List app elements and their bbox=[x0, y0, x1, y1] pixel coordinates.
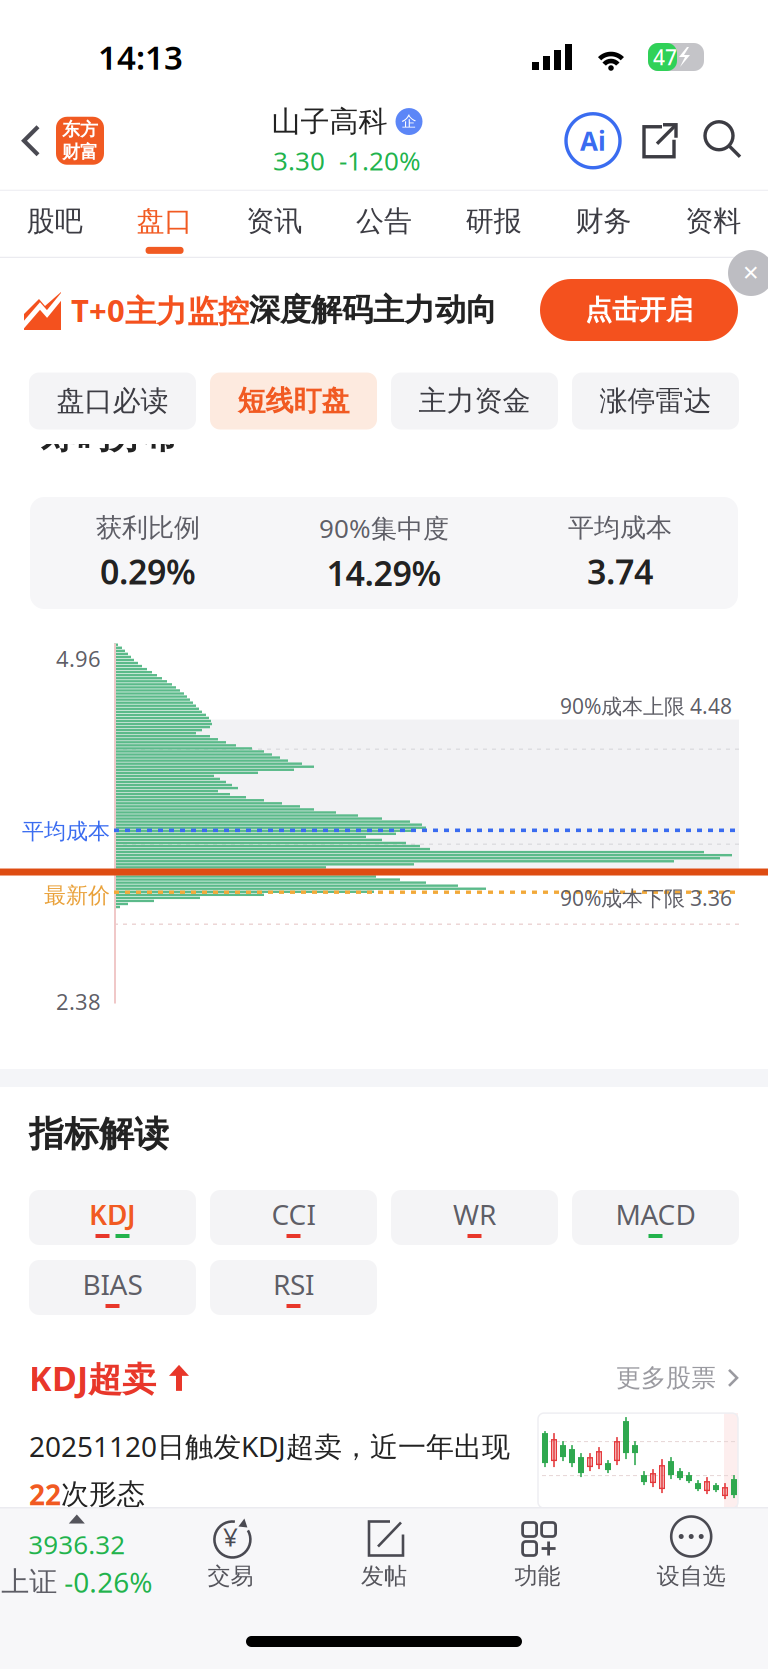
staticText: 涨停雷达 bbox=[599, 383, 711, 419]
staticText: 设自选 bbox=[657, 1561, 726, 1590]
staticText: KDJ超卖 bbox=[29, 1355, 156, 1401]
button[interactable]: 更多股票 bbox=[616, 1362, 739, 1394]
button[interactable]: RSI bbox=[210, 1260, 377, 1315]
button[interactable]: 设自选 bbox=[614, 1508, 768, 1612]
staticText: 短线盯盘 bbox=[237, 383, 349, 419]
staticText: 深度解码主力动向 bbox=[249, 290, 497, 330]
staticText: 东方 bbox=[62, 118, 98, 141]
staticText: 90%成本下限 3.36 bbox=[560, 883, 732, 912]
staticText: 获利比例 bbox=[96, 511, 200, 544]
staticText: 更多股票 bbox=[616, 1362, 716, 1394]
staticText: 财富 bbox=[62, 141, 98, 163]
staticText: 0.29% bbox=[100, 548, 196, 594]
staticText: 3936.32 bbox=[28, 1526, 125, 1562]
staticText: ¥ bbox=[223, 1519, 238, 1554]
staticText: 指标解读 bbox=[29, 1112, 169, 1156]
staticText: RSI bbox=[273, 1265, 314, 1303]
button[interactable]: 3936.32 bbox=[0, 1508, 154, 1612]
staticText: 资讯 bbox=[246, 204, 302, 239]
staticText: WR bbox=[453, 1195, 496, 1233]
button[interactable]: ¥ bbox=[154, 1508, 307, 1612]
button[interactable]: 资讯 bbox=[219, 191, 329, 257]
staticText: 平均成本 bbox=[568, 511, 672, 544]
staticText: 企 bbox=[401, 112, 416, 131]
button[interactable]: 盘口必读 bbox=[29, 372, 196, 429]
button[interactable]: 分享 bbox=[638, 119, 682, 163]
staticText: 2.38 bbox=[56, 986, 101, 1016]
button[interactable]: 点击开启 bbox=[540, 279, 738, 341]
button[interactable]: CCI bbox=[210, 1190, 377, 1245]
staticText: 4.96 bbox=[56, 643, 101, 673]
staticText: 次形态 bbox=[61, 1477, 145, 1512]
staticText: 盘口 bbox=[137, 204, 193, 239]
staticText: 筹码分布 bbox=[41, 415, 177, 458]
button[interactable]: 研报 bbox=[439, 191, 549, 257]
button[interactable]: WR bbox=[391, 1190, 558, 1245]
staticText: 上证 bbox=[1, 1564, 57, 1600]
staticText: 股吧 bbox=[27, 204, 83, 239]
staticText: 研报 bbox=[466, 204, 522, 239]
staticText: 90%成本上限 4.48 bbox=[560, 691, 732, 720]
button[interactable]: 返回 bbox=[0, 117, 104, 165]
staticText: 47 bbox=[653, 43, 677, 71]
staticText: 功能 bbox=[515, 1561, 561, 1590]
staticText: 资料 bbox=[685, 204, 741, 239]
staticText: CCI bbox=[271, 1195, 315, 1233]
staticText: BIAS bbox=[82, 1265, 142, 1303]
button[interactable]: 盘口 bbox=[110, 191, 219, 257]
staticText: 22 bbox=[29, 1475, 61, 1513]
staticText: 3.74 bbox=[587, 548, 653, 594]
staticText: 山子高科 bbox=[271, 103, 387, 140]
staticText: 发帖 bbox=[361, 1561, 407, 1590]
staticText: T+0主力监控 bbox=[71, 289, 249, 331]
staticText: 14.29% bbox=[326, 550, 441, 596]
staticText: 公告 bbox=[356, 204, 412, 239]
staticText: 平均成本 bbox=[22, 817, 110, 845]
button[interactable]: 股吧 bbox=[0, 191, 110, 257]
staticText: -0.26% bbox=[64, 1563, 152, 1601]
staticText: 最新价 bbox=[44, 881, 110, 909]
staticText: MACD bbox=[615, 1195, 695, 1233]
button[interactable]: MACD bbox=[572, 1190, 739, 1245]
button[interactable]: 财务 bbox=[549, 191, 658, 257]
staticText: ✕ bbox=[742, 261, 760, 285]
button[interactable]: 公告 bbox=[329, 191, 439, 257]
button[interactable]: KDJ bbox=[29, 1190, 196, 1245]
button[interactable]: 涨停雷达 bbox=[572, 372, 739, 429]
button[interactable]: 功能 bbox=[461, 1508, 614, 1612]
button[interactable]: 搜索 bbox=[700, 118, 746, 164]
button[interactable]: 关闭 bbox=[728, 250, 768, 296]
staticText: 点击开启 bbox=[585, 293, 693, 327]
button[interactable]: BIAS bbox=[29, 1260, 196, 1315]
button[interactable]: 短线盯盘 bbox=[210, 372, 377, 429]
staticText: KDJ bbox=[89, 1195, 136, 1233]
staticText: 20251120日触发KDJ超卖，近一年出现 bbox=[29, 1427, 510, 1465]
staticText: 财务 bbox=[575, 204, 631, 239]
staticText: 盘口必读 bbox=[56, 383, 168, 419]
staticText: 主力资金 bbox=[418, 383, 530, 419]
staticText: 14:13 bbox=[98, 34, 183, 79]
button[interactable]: 主力资金 bbox=[391, 372, 558, 429]
staticText: 3.30 -1.20% bbox=[273, 143, 421, 178]
button[interactable]: 发帖 bbox=[307, 1508, 461, 1612]
staticText: 90%集中度 bbox=[319, 510, 449, 545]
button[interactable]: 资料 bbox=[658, 191, 768, 257]
button[interactable]: AI 助手 bbox=[566, 114, 620, 168]
staticText: Ai bbox=[580, 123, 606, 158]
staticText: 交易 bbox=[207, 1561, 253, 1590]
